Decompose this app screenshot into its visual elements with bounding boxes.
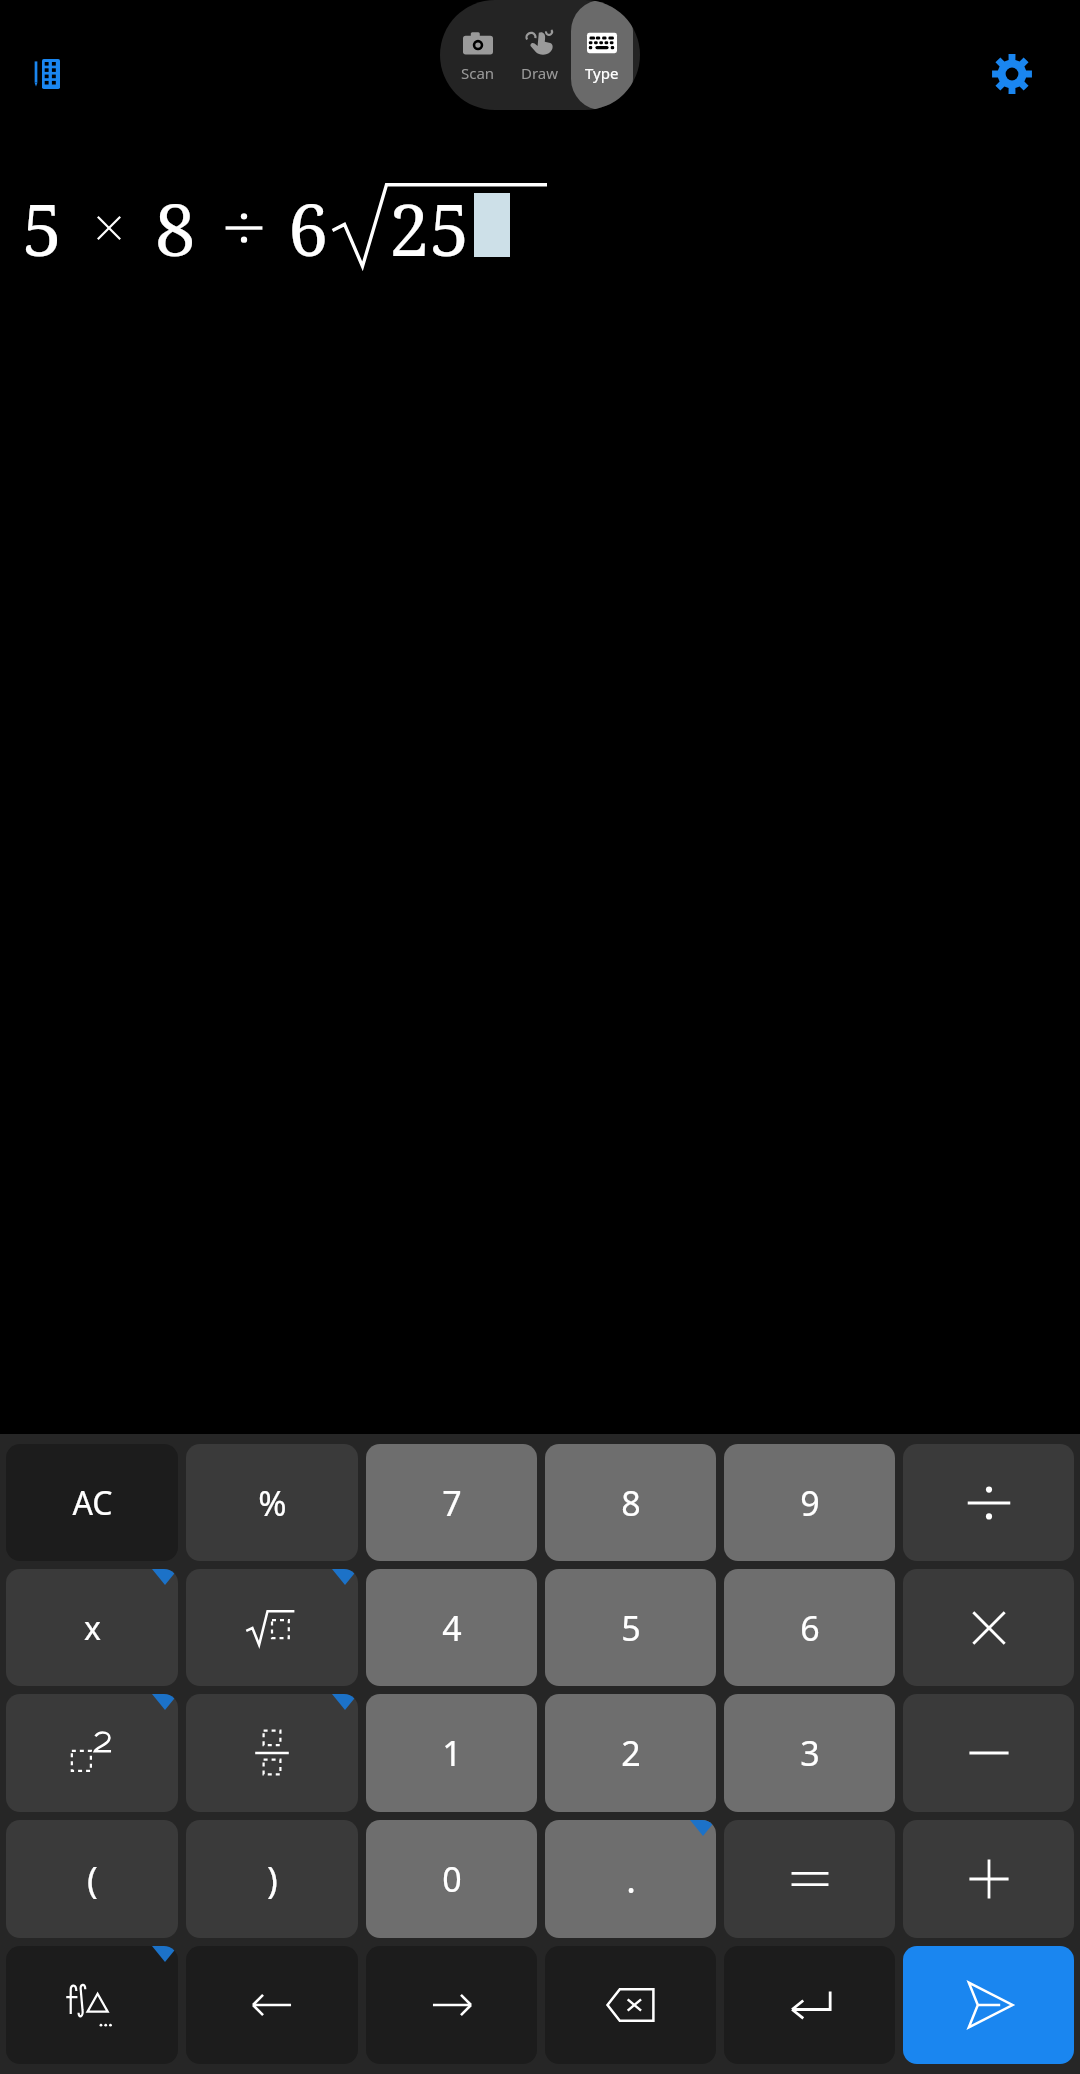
button[interactable]: 4 <box>366 1569 537 1686</box>
button[interactable]: 6 <box>724 1569 895 1686</box>
staticText: Type <box>585 63 619 83</box>
button[interactable]: Scan <box>447 0 509 110</box>
staticText: x <box>84 1606 101 1650</box>
staticText: AC <box>72 1481 113 1525</box>
button[interactable]: 2 <box>545 1694 716 1812</box>
button[interactable]: Submit <box>903 1946 1074 2064</box>
button[interactable]: Functions <box>6 1946 178 2064</box>
staticText: Scan <box>461 63 495 83</box>
staticText: ) <box>267 1855 278 1904</box>
staticText: 6 <box>288 179 329 277</box>
staticText: 9 <box>800 1480 820 1526</box>
staticText: 2 <box>621 1730 641 1776</box>
staticText: Draw <box>521 63 559 83</box>
button[interactable]: Fraction <box>186 1694 358 1812</box>
button[interactable]: 8 <box>545 1444 716 1561</box>
staticText: 3 <box>800 1730 820 1776</box>
button[interactable]: Settings <box>980 42 1044 106</box>
button[interactable]: ( <box>6 1820 178 1938</box>
button[interactable]: . <box>545 1820 716 1938</box>
button[interactable]: AC <box>6 1444 178 1561</box>
button[interactable]: % <box>186 1444 358 1561</box>
button[interactable]: Equals <box>724 1820 895 1938</box>
button[interactable]: 3 <box>724 1694 895 1812</box>
staticText: 8 <box>155 179 196 277</box>
button[interactable]: Left <box>186 1946 358 2064</box>
staticText: 4 <box>442 1605 462 1651</box>
button[interactable]: Minus <box>903 1694 1074 1812</box>
staticText: 5 <box>22 179 63 277</box>
button[interactable]: Draw <box>509 0 571 110</box>
button[interactable]: Notes <box>16 42 80 106</box>
button[interactable]: 7 <box>366 1444 537 1561</box>
staticText: % <box>258 1480 287 1526</box>
staticText: 8 <box>621 1480 641 1526</box>
button[interactable]: Power <box>6 1694 178 1812</box>
button[interactable]: 9 <box>724 1444 895 1561</box>
button[interactable]: Backspace <box>545 1946 716 2064</box>
button[interactable]: Square root <box>186 1569 358 1686</box>
staticText: . <box>626 1855 636 1904</box>
staticText: 0 <box>442 1856 462 1902</box>
staticText: 7 <box>442 1480 462 1526</box>
button[interactable]: Right <box>366 1946 537 2064</box>
staticText: 25 <box>389 179 470 277</box>
button[interactable]: New line <box>724 1946 895 2064</box>
staticText: 1 <box>442 1730 462 1776</box>
button[interactable]: Multiply <box>903 1569 1074 1686</box>
button[interactable]: Divide <box>903 1444 1074 1561</box>
button[interactable]: ) <box>186 1820 358 1938</box>
button[interactable]: Plus <box>903 1820 1074 1938</box>
staticText: 5 <box>621 1605 641 1651</box>
button[interactable]: x <box>6 1569 178 1686</box>
button[interactable]: 0 <box>366 1820 537 1938</box>
button[interactable]: 5 <box>545 1569 716 1686</box>
button[interactable]: Type <box>571 0 633 110</box>
staticText: 6 <box>800 1605 820 1651</box>
button[interactable]: 1 <box>366 1694 537 1812</box>
staticText: ( <box>87 1855 98 1904</box>
